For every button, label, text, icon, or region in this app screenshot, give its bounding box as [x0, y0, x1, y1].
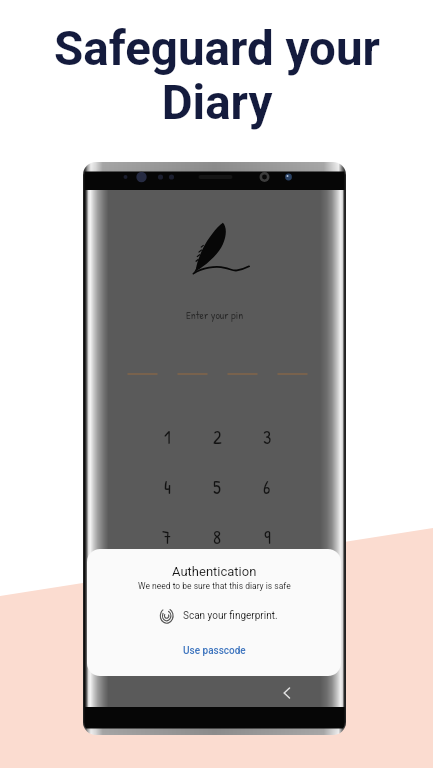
staticText: 1 — [164, 425, 171, 450]
staticText: 7 — [162, 525, 172, 550]
staticText: 5 — [213, 475, 221, 500]
button[interactable]: 2 — [195, 415, 239, 459]
staticText: 9 — [264, 525, 271, 550]
staticText: 3 — [263, 425, 272, 450]
button[interactable]: Back — [275, 681, 299, 705]
staticText: 8 — [213, 525, 222, 550]
button[interactable]: 6 — [245, 465, 289, 509]
staticText: Scan your fingerprint. — [183, 610, 278, 622]
staticText: Use passcode — [183, 645, 246, 657]
staticText: 6 — [263, 475, 271, 500]
button[interactable]: 1 — [145, 415, 189, 459]
button[interactable]: 5 — [195, 465, 239, 509]
button[interactable]: 9 — [245, 515, 289, 559]
staticText: Enter your pin — [186, 308, 244, 323]
button[interactable]: 4 — [145, 465, 189, 509]
staticText: We need to be sure that this diary is sa… — [138, 581, 291, 591]
button[interactable]: 7 — [145, 515, 189, 559]
button[interactable]: 8 — [195, 515, 239, 559]
button[interactable]: 3 — [245, 415, 289, 459]
staticText: Safeguard your Diary — [54, 21, 380, 130]
staticText: 2 — [213, 425, 222, 450]
button[interactable]: Use passcode — [169, 642, 260, 660]
staticText: 4 — [164, 475, 171, 500]
staticText: Authentication — [172, 564, 257, 579]
